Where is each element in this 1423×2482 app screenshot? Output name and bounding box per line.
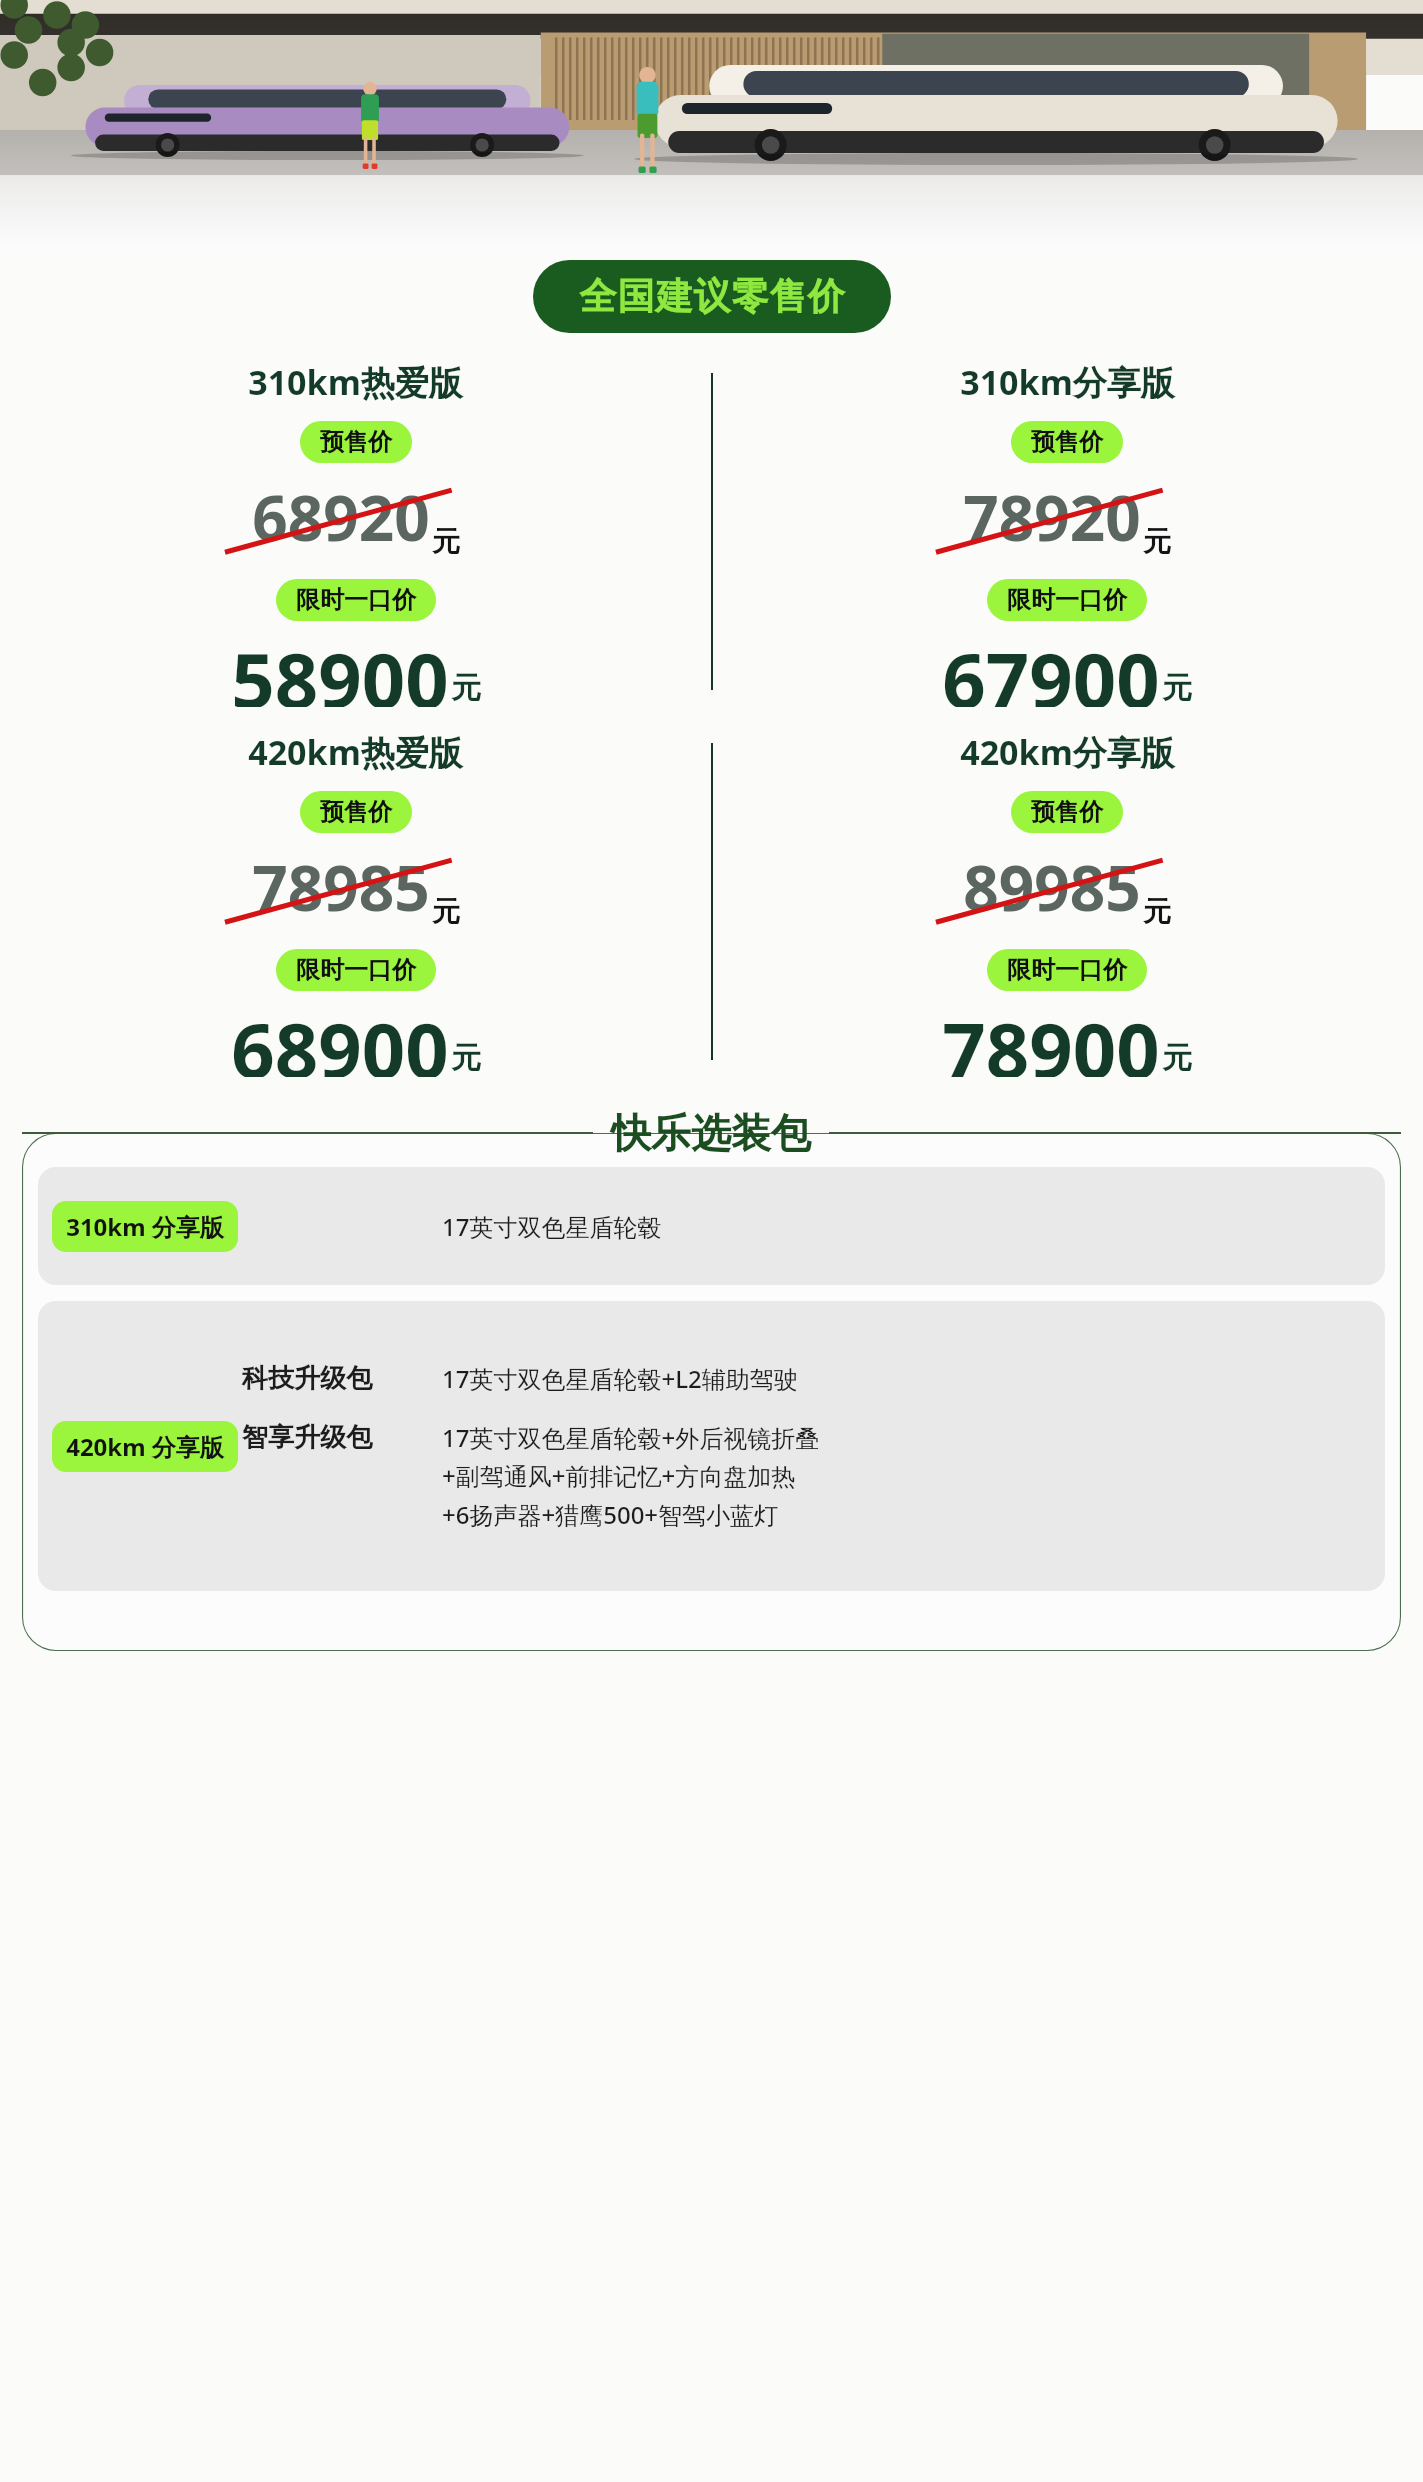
staticText: 310km热爱版	[248, 359, 463, 405]
staticText: 限时一口价	[296, 585, 416, 615]
staticText: 预售价	[320, 797, 392, 827]
button[interactable]: 预售价	[1011, 791, 1123, 833]
staticText: 78900	[942, 997, 1160, 1077]
staticText: 17英寸双色星盾轮毂+L2辅助驾驶	[442, 1362, 798, 1395]
button[interactable]: 420km 分享版	[38, 1301, 1385, 1591]
staticText: 预售价	[1031, 797, 1103, 827]
staticText: 420km热爱版	[248, 729, 463, 775]
staticText: 元	[451, 1039, 481, 1077]
staticText: 元	[1143, 894, 1171, 929]
staticText: 78920	[963, 475, 1141, 559]
button[interactable]: 限时一口价	[276, 579, 436, 621]
staticText: 67900	[942, 627, 1160, 707]
staticText: 预售价	[1031, 427, 1103, 457]
button[interactable]: 310km 分享版	[38, 1167, 1385, 1285]
staticText: 预售价	[320, 427, 392, 457]
staticText: 全国建议零售价	[579, 273, 845, 320]
staticText: 17英寸双色星盾轮毂	[442, 1210, 662, 1243]
staticText: 快乐选装包	[611, 1108, 811, 1158]
staticText: 310km分享版	[960, 359, 1175, 405]
button[interactable]: 限时一口价	[987, 579, 1147, 621]
staticText: 元	[1143, 524, 1171, 559]
staticText: 68900	[231, 997, 449, 1077]
staticText: 元	[1162, 669, 1192, 707]
staticText: 限时一口价	[296, 955, 416, 985]
staticText: 68920	[252, 475, 430, 559]
staticText: 智享升级包	[242, 1421, 372, 1454]
staticText: 元	[432, 524, 460, 559]
staticText: 科技升级包	[242, 1362, 372, 1395]
staticText: 17英寸双色星盾轮毂+外后视镜折叠 +副驾通风+前排记忆+方向盘加热 +6扬声器…	[442, 1421, 820, 1531]
staticText: 89985	[963, 845, 1141, 929]
staticText: 元	[1162, 1039, 1192, 1077]
staticText: 78985	[252, 845, 430, 929]
button[interactable]: 预售价	[1011, 421, 1123, 463]
button[interactable]: 预售价	[300, 421, 412, 463]
staticText: 元	[451, 669, 481, 707]
button[interactable]: 全国建议零售价	[533, 260, 891, 333]
staticText: 限时一口价	[1007, 585, 1127, 615]
staticText: 元	[432, 894, 460, 929]
staticText: 420km 分享版	[66, 1430, 224, 1463]
button[interactable]: 限时一口价	[987, 949, 1147, 991]
staticText: 限时一口价	[1007, 955, 1127, 985]
button[interactable]: 限时一口价	[276, 949, 436, 991]
staticText: 310km 分享版	[66, 1210, 224, 1243]
staticText: 58900	[231, 627, 449, 707]
button[interactable]: 预售价	[300, 791, 412, 833]
staticText: 420km分享版	[960, 729, 1175, 775]
